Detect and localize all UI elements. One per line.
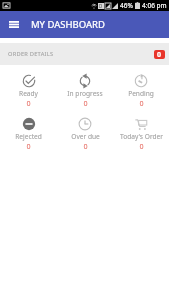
staticText: 0 bbox=[139, 98, 144, 107]
staticText: Ready bbox=[19, 89, 38, 98]
staticText: Today's Order bbox=[120, 132, 163, 141]
button[interactable]: In progress bbox=[57, 73, 113, 107]
staticText: 4:06 pm bbox=[142, 1, 167, 10]
staticText: 0 bbox=[26, 98, 31, 107]
staticText: In progress bbox=[67, 89, 103, 98]
staticText: 0 bbox=[139, 141, 144, 150]
button[interactable]: Today's Order bbox=[113, 116, 169, 150]
staticText: Over due bbox=[71, 132, 100, 141]
button[interactable]: Open navigation menu bbox=[0, 11, 27, 38]
staticText: MY DASHBOARD bbox=[31, 18, 105, 31]
button[interactable]: Rejected bbox=[0, 116, 57, 150]
staticText: 0 bbox=[157, 50, 162, 59]
staticText: Rejected bbox=[15, 132, 42, 141]
staticText: 0 bbox=[83, 141, 88, 150]
button[interactable]: Over due bbox=[57, 116, 113, 150]
button[interactable]: Pending bbox=[113, 73, 169, 107]
button[interactable]: 0 bbox=[154, 50, 165, 59]
staticText: Pending bbox=[128, 89, 154, 98]
staticText: 0 bbox=[83, 98, 88, 107]
staticText: ORDER DETAILS bbox=[8, 50, 54, 58]
staticText: 46% bbox=[120, 1, 133, 10]
staticText: D bbox=[99, 3, 103, 9]
staticText: 0 bbox=[26, 141, 31, 150]
button[interactable]: Ready bbox=[0, 73, 57, 107]
